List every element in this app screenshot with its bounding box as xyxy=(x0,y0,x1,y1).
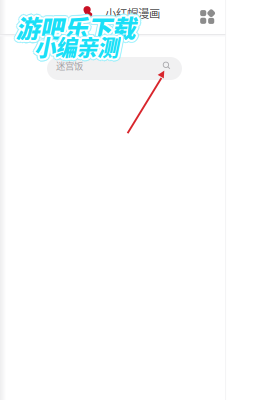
staticText: 游吧乐下载 xyxy=(16,10,136,44)
staticText: 小编亲测 xyxy=(33,33,117,64)
staticText: 游吧乐下载 xyxy=(17,10,137,45)
staticText: 小编亲测 xyxy=(35,31,119,62)
staticText: 小编亲测 xyxy=(35,32,119,63)
staticText: 小编亲测 xyxy=(33,30,117,61)
staticText: 游吧乐下载 xyxy=(14,7,134,42)
staticText: 小编亲测 xyxy=(34,30,118,61)
staticText: 小编亲测 xyxy=(34,30,118,61)
staticText: 小编亲测 xyxy=(37,31,121,62)
staticText: 游吧乐下载 xyxy=(18,8,138,43)
staticText: 游吧乐下载 xyxy=(15,9,135,44)
staticText: 游吧乐下载 xyxy=(15,9,135,43)
staticText: 游吧乐下载 xyxy=(16,12,136,46)
staticText: 游吧乐下载 xyxy=(15,11,135,45)
staticText: 游吧乐下载 xyxy=(15,8,135,43)
button[interactable]: 迷宫饭 xyxy=(47,57,182,80)
staticText: 小编亲测 xyxy=(32,30,116,61)
staticText: 游吧乐下载 xyxy=(17,9,137,43)
staticText: 游吧乐下载 xyxy=(15,10,135,45)
staticText: 小编亲测 xyxy=(34,28,118,59)
staticText: 游吧乐下载 xyxy=(17,7,137,42)
staticText: 游吧乐下载 xyxy=(16,11,136,45)
staticText: 游吧乐下载 xyxy=(14,9,134,43)
staticText: 小编亲测 xyxy=(35,31,119,62)
staticText: 游吧乐下载 xyxy=(13,11,133,46)
staticText: 游吧乐下载 xyxy=(15,11,135,46)
staticText: 游吧乐下载 xyxy=(14,10,134,44)
staticText: 小编亲测 xyxy=(32,31,116,62)
staticText: 游吧乐下载 xyxy=(17,12,137,47)
staticText: 游吧乐下载 xyxy=(17,9,137,44)
staticText: 小编亲测 xyxy=(35,30,119,61)
staticText: 游吧乐下载 xyxy=(16,6,136,41)
staticText: 小编亲测 xyxy=(36,31,120,62)
staticText: 游吧乐下载 xyxy=(13,10,133,44)
staticText: 小编亲测 xyxy=(33,31,117,62)
staticText: 小编亲测 xyxy=(31,29,115,60)
staticText: 小编亲测 xyxy=(34,32,118,63)
staticText: 小编亲测 xyxy=(36,32,120,63)
button[interactable]: Categories xyxy=(191,1,223,33)
staticText: 小编亲测 xyxy=(33,28,117,59)
staticText: 游吧乐下载 xyxy=(14,11,134,45)
staticText: 游吧乐下载 xyxy=(16,8,136,42)
staticText: 游吧乐下载 xyxy=(17,11,137,45)
staticText: 游吧乐下载 xyxy=(15,10,135,44)
staticText: 游吧乐下载 xyxy=(17,10,137,44)
staticText: 小编亲测 xyxy=(34,29,118,60)
staticText: 小编亲测 xyxy=(31,32,115,63)
staticText: 小编亲测 xyxy=(33,31,117,62)
staticText: 游吧乐下载 xyxy=(19,10,139,44)
staticText: 小编亲测 xyxy=(33,33,117,63)
staticText: 游吧乐下载 xyxy=(16,13,136,47)
staticText: 小编亲测 xyxy=(31,31,115,62)
staticText: 小编亲测 xyxy=(33,29,117,60)
staticText: 游吧乐下载 xyxy=(18,11,138,46)
staticText: 小编亲测 xyxy=(34,32,118,63)
staticText: 小编亲测 xyxy=(37,29,121,60)
staticText: 游吧乐下载 xyxy=(16,8,136,43)
staticText: 游吧乐下载 xyxy=(16,9,136,43)
staticText: 游吧乐下载 xyxy=(14,12,134,47)
staticText: 小编亲测 xyxy=(35,30,119,61)
staticText: 小编亲测 xyxy=(36,30,120,61)
staticText: 小红帽漫画 xyxy=(105,5,160,21)
staticText: 游吧乐下载 xyxy=(16,11,136,45)
staticText: 游吧乐下载 xyxy=(18,10,138,44)
staticText: 小编亲测 xyxy=(32,32,116,63)
staticText: 游吧乐下载 xyxy=(17,11,137,46)
staticText: 游吧乐下载 xyxy=(17,8,137,43)
staticText: 小编亲测 xyxy=(35,29,119,60)
staticText: 小编亲测 xyxy=(36,28,120,59)
staticText: 小编亲测 xyxy=(34,34,118,65)
staticText: 游吧乐下载 xyxy=(13,8,133,43)
staticText: 小编亲测 xyxy=(34,33,118,64)
staticText: 小编亲测 xyxy=(36,33,120,64)
staticText: 小编亲测 xyxy=(35,33,119,63)
staticText: 小编亲测 xyxy=(37,32,121,63)
staticText: 迷宫饭 xyxy=(56,59,83,72)
staticText: 小编亲测 xyxy=(34,31,118,62)
